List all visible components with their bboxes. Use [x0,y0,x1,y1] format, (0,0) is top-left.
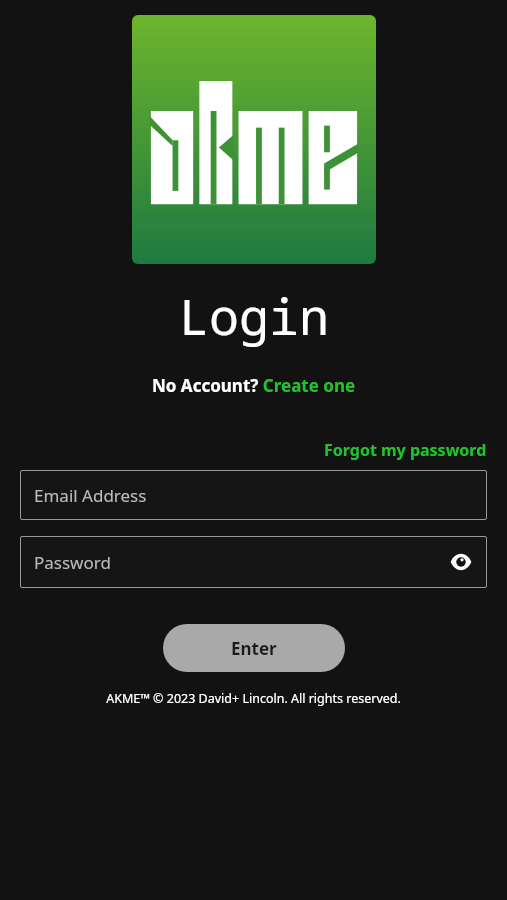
button[interactable]: No Account? Create one [152,374,356,397]
staticText: AKME™ © 2023 David+ Lincoln. All rights … [106,690,401,707]
staticText: No Account? Create one [152,374,356,397]
staticText: Email Address [34,484,147,507]
staticText: Login [179,282,329,350]
button[interactable]: Show password [445,546,477,578]
staticText: Password [34,551,111,574]
button[interactable]: Password [20,536,487,588]
button[interactable]: Email Address [20,470,487,520]
button[interactable]: Forgot my password [324,439,487,461]
button[interactable]: Enter [163,624,345,672]
staticText: Forgot my password [324,439,487,461]
staticText: Enter [231,637,277,660]
